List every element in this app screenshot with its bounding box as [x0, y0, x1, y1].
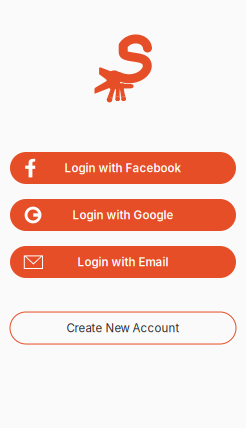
- staticText: Login with Google: [72, 208, 173, 222]
- staticText: Login with Facebook: [64, 161, 181, 175]
- staticText: Login with Email: [77, 255, 168, 269]
- button[interactable]: Login with Google: [0, 199, 246, 231]
- button[interactable]: Create New Account: [0, 312, 246, 344]
- button[interactable]: Login with Email: [0, 246, 246, 278]
- staticText: Create New Account: [66, 321, 179, 335]
- button[interactable]: Login with Facebook: [0, 152, 246, 184]
